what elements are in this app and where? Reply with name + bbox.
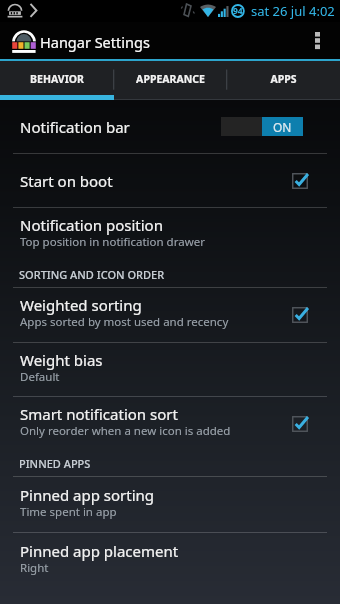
staticText: APPEARANCE — [136, 72, 205, 86]
staticText: Top position in notification drawer — [20, 234, 205, 250]
button[interactable]: Notification bar toggle — [221, 117, 303, 136]
button[interactable]: BEHAVIOR — [0, 61, 114, 100]
staticText: Apps sorted by most used and recency — [20, 314, 229, 330]
staticText: APPS — [270, 72, 297, 86]
button[interactable]: Notification bar — [0, 100, 340, 153]
staticText: Weighted sorting — [20, 295, 142, 315]
button[interactable]: Smart notification sort — [0, 397, 340, 451]
staticText: Only reorder when a new icon is added — [20, 423, 231, 439]
staticText: Hangar Settings — [40, 32, 150, 52]
staticText: 94 — [233, 5, 243, 17]
staticText: Notification bar — [20, 117, 130, 137]
staticText: Pinned app sorting — [20, 485, 155, 505]
staticText: SORTING AND ICON ORDER — [19, 267, 165, 282]
button[interactable]: Weight bias — [0, 343, 340, 396]
button[interactable]: Start on boot — [0, 154, 340, 207]
staticText: Time spent in app — [20, 504, 117, 520]
button[interactable]: APPS — [227, 61, 340, 100]
button[interactable]: Notification position — [0, 208, 340, 262]
staticText: Notification position — [20, 215, 163, 235]
button[interactable]: Enabled checkbox — [287, 168, 313, 194]
staticText: Right — [20, 560, 49, 576]
staticText: sat 26 jul 4:02 — [251, 2, 335, 20]
staticText: Start on boot — [20, 171, 113, 191]
staticText: Default — [20, 369, 60, 385]
staticText: Smart notification sort — [20, 404, 178, 424]
staticText: PINNED APPS — [19, 456, 91, 471]
button[interactable]: Pinned app sorting — [0, 477, 340, 532]
button[interactable]: More options — [309, 22, 326, 61]
button[interactable]: Enabled checkbox — [287, 302, 313, 328]
button[interactable]: APPEARANCE — [114, 61, 227, 100]
button[interactable]: Enabled checkbox — [287, 411, 313, 437]
button[interactable]: Weighted sorting — [0, 288, 340, 342]
button[interactable]: Pinned app placement — [0, 533, 340, 588]
staticText: ON — [273, 119, 292, 135]
staticText: Pinned app placement — [20, 541, 179, 561]
staticText: Weight bias — [20, 350, 103, 370]
staticText: BEHAVIOR — [30, 72, 84, 86]
